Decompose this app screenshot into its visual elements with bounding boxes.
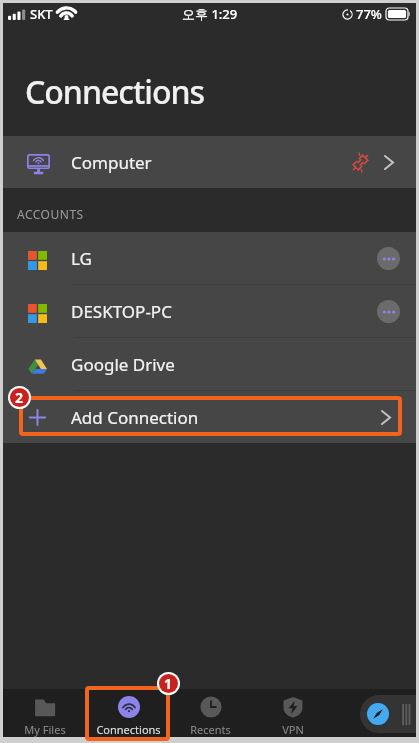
staticText: Connections: [96, 722, 161, 737]
staticText: Add Connection: [71, 406, 199, 429]
button[interactable]: More options: [377, 247, 400, 270]
button[interactable]: Add Connection: [3, 391, 416, 443]
staticText: ACCOUNTS: [17, 206, 84, 222]
button[interactable]: Computer: [3, 136, 416, 188]
staticText: My Files: [24, 722, 66, 737]
button[interactable]: VPN: [251, 689, 334, 737]
button[interactable]: My Files: [3, 689, 87, 737]
staticText: Google Drive: [71, 353, 175, 376]
button[interactable]: Safari: [360, 695, 416, 733]
staticText: SKT: [30, 5, 53, 23]
staticText: DESKTOP-PC: [71, 300, 172, 323]
staticText: 오후 1:29: [182, 5, 238, 23]
button[interactable]: More options: [377, 300, 400, 323]
button[interactable]: DESKTOP-PC: [3, 285, 416, 337]
button[interactable]: Connections: [87, 689, 170, 737]
staticText: 2: [15, 388, 24, 407]
button[interactable]: Disconnected: [352, 154, 369, 171]
staticText: 77%: [356, 5, 382, 23]
staticText: LG: [71, 247, 92, 270]
staticText: 1: [164, 674, 173, 693]
staticText: VPN: [282, 722, 304, 737]
button[interactable]: LG: [3, 232, 416, 284]
staticText: Recents: [190, 722, 231, 737]
staticText: Computer: [71, 151, 152, 174]
button[interactable]: Google Drive: [3, 338, 416, 390]
button[interactable]: Recents: [170, 689, 251, 737]
staticText: Connections: [25, 70, 205, 114]
